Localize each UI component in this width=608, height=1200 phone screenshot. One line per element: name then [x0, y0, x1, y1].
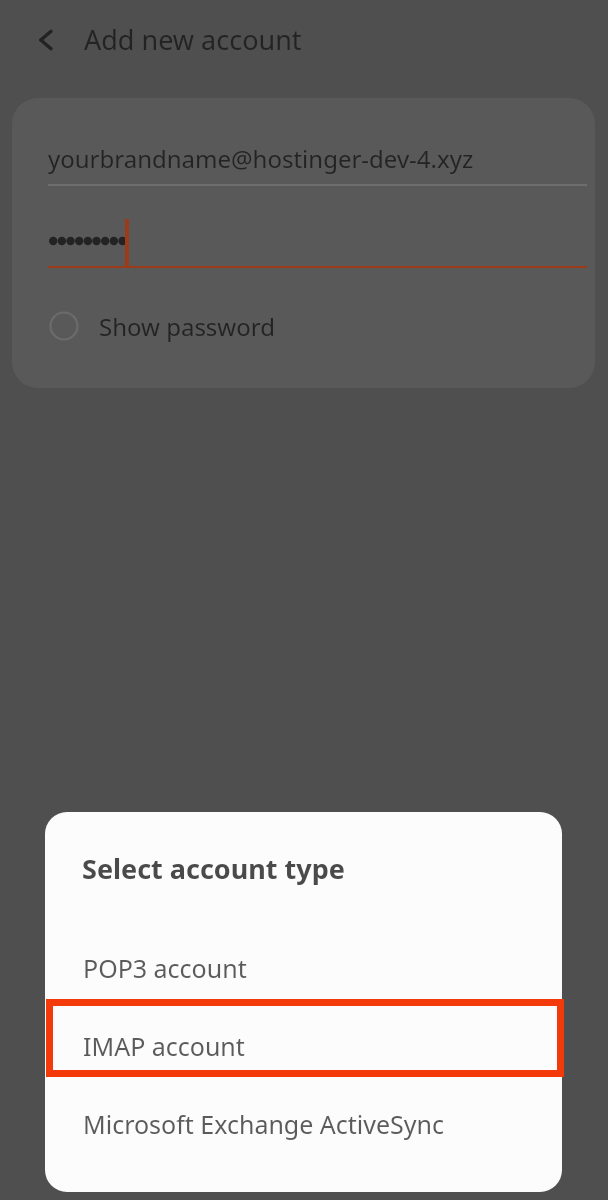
staticText: Add new account [84, 21, 302, 58]
button[interactable]: Microsoft Exchange ActiveSync [45, 1085, 562, 1163]
button[interactable]: POP3 account [45, 929, 562, 1007]
staticText: Select account type [82, 850, 345, 887]
button[interactable]: IMAP account [45, 1007, 562, 1085]
button[interactable]: Back [22, 14, 74, 66]
staticText: yourbrandname@hostinger-dev-4.xyz [48, 142, 474, 175]
button[interactable]: yourbrandname@hostinger-dev-4.xyz [36, 138, 576, 190]
button[interactable]: Show password [36, 298, 336, 354]
staticText: IMAP account [83, 1029, 245, 1063]
staticText: Show password [99, 310, 275, 343]
staticText: POP3 account [83, 951, 247, 985]
button[interactable] [36, 218, 576, 268]
staticText: Microsoft Exchange ActiveSync [83, 1107, 445, 1141]
